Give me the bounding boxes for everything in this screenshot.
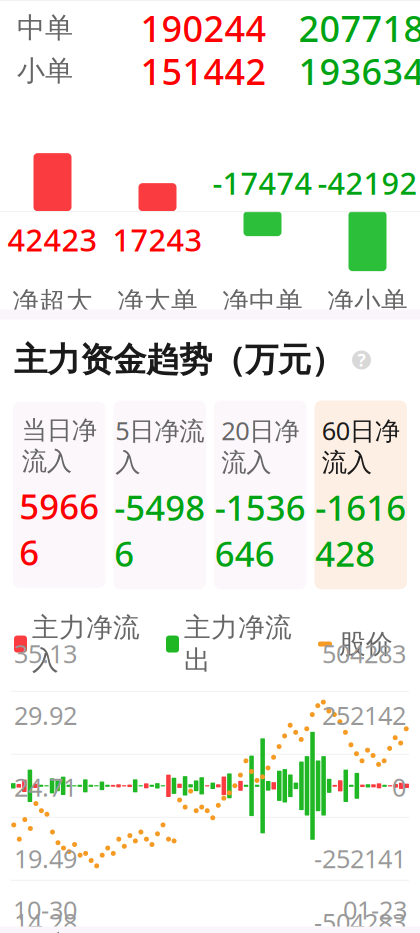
staticText: 19.49 (14, 842, 77, 875)
staticText: 10-30 (13, 893, 77, 926)
button[interactable]: 说明 (352, 350, 371, 369)
staticText: -1536646 (215, 484, 306, 576)
staticText: 207718 (298, 4, 420, 52)
button[interactable]: 当日净流入 (13, 402, 105, 588)
staticText: 504283 (322, 637, 406, 670)
button[interactable]: 60日净流入 (314, 400, 407, 589)
staticText: 小单 (17, 54, 73, 88)
staticText: 股价 (339, 628, 393, 660)
staticText: -42192 (317, 162, 417, 203)
staticText: -504283 (314, 905, 406, 933)
staticText: 当日净流入 (22, 415, 97, 477)
staticText: 中单 (17, 11, 73, 45)
staticText: 35.13 (14, 637, 77, 670)
staticText: ▲ (53, 928, 63, 933)
staticText: 24.71 (14, 770, 77, 804)
staticText: 59666 (19, 483, 99, 575)
staticText: 14.28 (14, 905, 77, 933)
staticText: 60日净流入 (322, 413, 400, 478)
staticText: 主力资金趋势（万元） (14, 339, 344, 380)
staticText: 29.92 (14, 698, 77, 732)
staticText: 净小单 (327, 285, 408, 318)
staticText: 0 (392, 770, 406, 804)
staticText: -17474 (212, 162, 312, 203)
staticText: 42423 (7, 219, 97, 260)
staticText: 252142 (322, 698, 406, 732)
staticText: -54986 (114, 484, 205, 576)
staticText: 01-23 (343, 893, 407, 926)
staticText: 151442 (140, 47, 266, 95)
staticText: 190244 (140, 4, 266, 52)
staticText: 净超大 (12, 285, 93, 318)
staticText: 5日净流入 (115, 413, 204, 478)
button[interactable]: 上证指数 (0, 928, 150, 933)
staticText: 17243 (112, 219, 202, 260)
staticText: -1616428 (315, 484, 406, 576)
staticText: 20日净流入 (221, 413, 299, 478)
staticText: 主力净流出 (184, 611, 292, 677)
staticText: 净大单 (117, 285, 198, 318)
staticText: 净中单 (222, 285, 303, 318)
staticText: 主力净流入 (32, 611, 140, 677)
button[interactable]: 5日净流入 (113, 400, 206, 589)
staticText: ? (357, 348, 365, 371)
staticText: -252141 (314, 842, 406, 875)
button[interactable]: 20日净流入 (214, 400, 306, 589)
staticText: 193634 (298, 47, 420, 95)
